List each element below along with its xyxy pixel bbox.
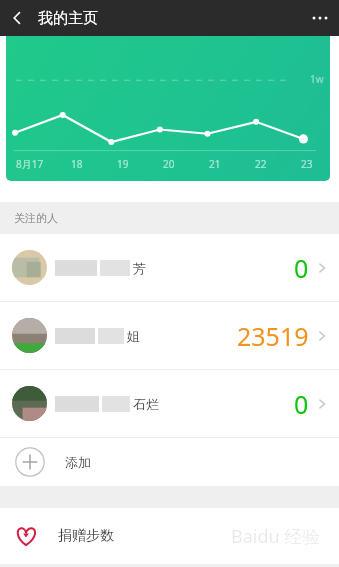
staticText: 0 — [294, 251, 309, 285]
button[interactable]: 石烂 — [0, 370, 339, 437]
staticText: 20 — [163, 157, 175, 171]
button[interactable]: 更多 — [301, 0, 339, 36]
staticText: 添加 — [65, 454, 91, 470]
staticText: 19 — [117, 157, 129, 171]
button[interactable]: 添加 — [0, 438, 339, 486]
staticText: 22 — [255, 157, 267, 171]
staticText: 捐赠步数 — [58, 527, 114, 545]
staticText: 18 — [71, 157, 83, 171]
staticText: 石烂 — [133, 396, 159, 412]
button[interactable]: 姐 — [0, 302, 339, 369]
staticText: 姐 — [127, 328, 140, 344]
staticText: 芳 — [133, 260, 146, 276]
staticText: 21 — [209, 157, 221, 171]
staticText: Baidu 经验 — [231, 524, 321, 549]
button[interactable]: 1w — [6, 36, 330, 181]
staticText: 关注的人 — [14, 211, 58, 225]
button[interactable]: 捐赠步数 — [0, 508, 339, 564]
staticText: 23 — [301, 157, 313, 171]
button[interactable]: 芳 — [0, 234, 339, 301]
button[interactable]: 返回 — [0, 1, 34, 35]
staticText: 我的主页 — [38, 9, 98, 28]
staticText: 0 — [294, 387, 309, 421]
staticText: 8月17 — [16, 157, 44, 171]
staticText: 1w — [310, 72, 324, 86]
staticText: 23519 — [237, 319, 309, 353]
